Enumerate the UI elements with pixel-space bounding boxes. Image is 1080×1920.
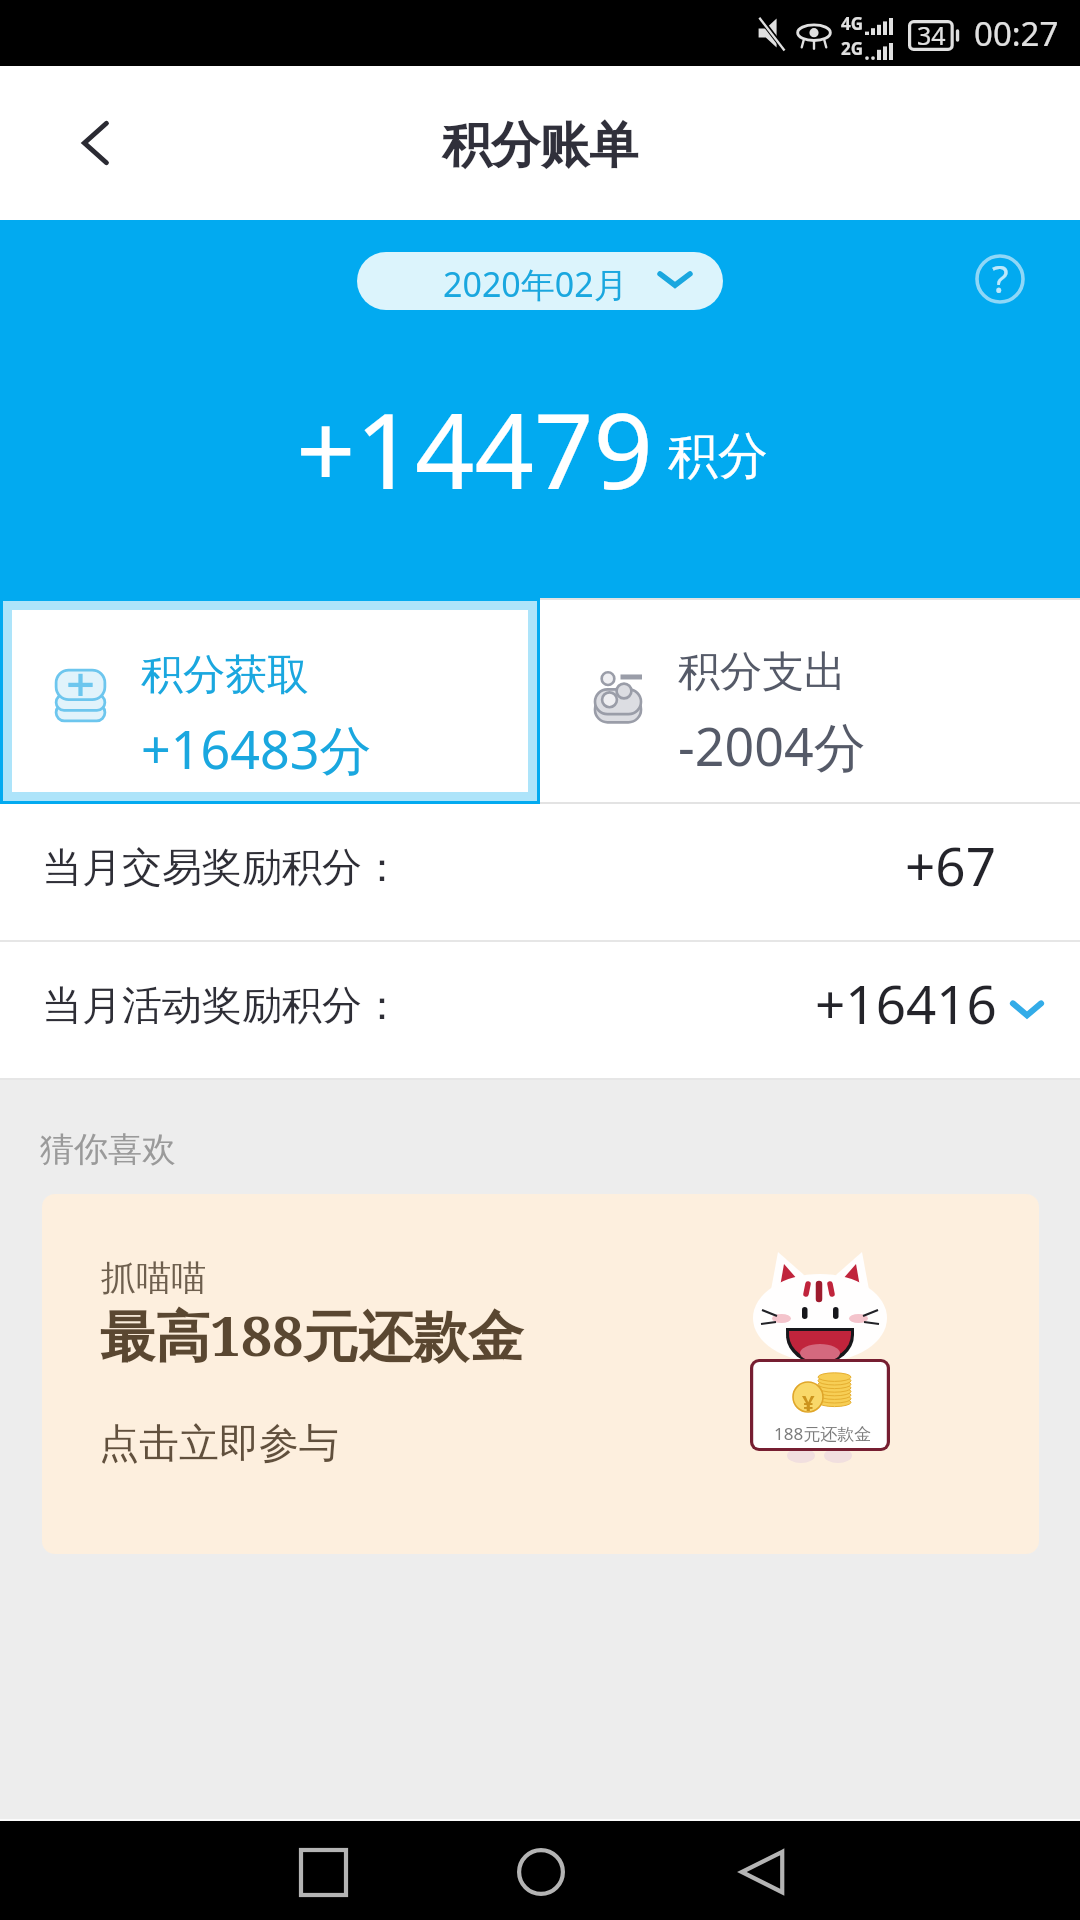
staticText: ¥ <box>802 1387 815 1417</box>
staticText: 点击立即参与 <box>99 1418 339 1468</box>
button[interactable]: Back <box>714 1824 810 1920</box>
staticText: 当月交易奖励积分： <box>42 842 402 892</box>
button[interactable]: Recents <box>275 1824 371 1920</box>
staticText: -2004分 <box>678 710 866 781</box>
button[interactable]: 当月交易奖励积分： <box>0 804 1080 940</box>
staticText: 积分获取 <box>141 649 309 702</box>
staticText: ? <box>992 252 1009 304</box>
staticText: 2020年02月 <box>443 261 628 307</box>
staticText: 34 <box>917 18 946 52</box>
staticText: +16483分 <box>141 713 372 784</box>
button[interactable]: 积分获取 <box>3 601 537 801</box>
staticText: 当月活动奖励积分： <box>42 980 402 1030</box>
staticText: 最高188元还款金 <box>100 1297 524 1372</box>
staticText: +14479 <box>296 378 653 520</box>
staticText: 积分支出 <box>678 646 846 699</box>
staticText: 积分账单 <box>442 115 638 177</box>
staticText: +67 <box>905 829 996 901</box>
staticText: 188元还款金 <box>774 1422 872 1445</box>
staticText: 猜你喜欢 <box>40 1128 176 1171</box>
staticText: 4G <box>841 12 864 35</box>
button[interactable]: 当月活动奖励积分： <box>0 942 1080 1078</box>
staticText: +16416 <box>815 967 997 1039</box>
button[interactable]: Help <box>954 233 1046 325</box>
staticText: 00:27 <box>974 11 1059 56</box>
staticText: 抓喵喵 <box>101 1256 206 1300</box>
button[interactable]: Home <box>493 1824 589 1920</box>
button[interactable]: Back <box>48 95 144 191</box>
button[interactable]: 积分支出 <box>540 598 1080 804</box>
button[interactable]: 抓喵喵 <box>42 1194 1039 1554</box>
button[interactable]: 2020年02月 <box>357 252 723 310</box>
staticText: 2G <box>841 37 864 60</box>
staticText: 积分 <box>668 425 768 488</box>
